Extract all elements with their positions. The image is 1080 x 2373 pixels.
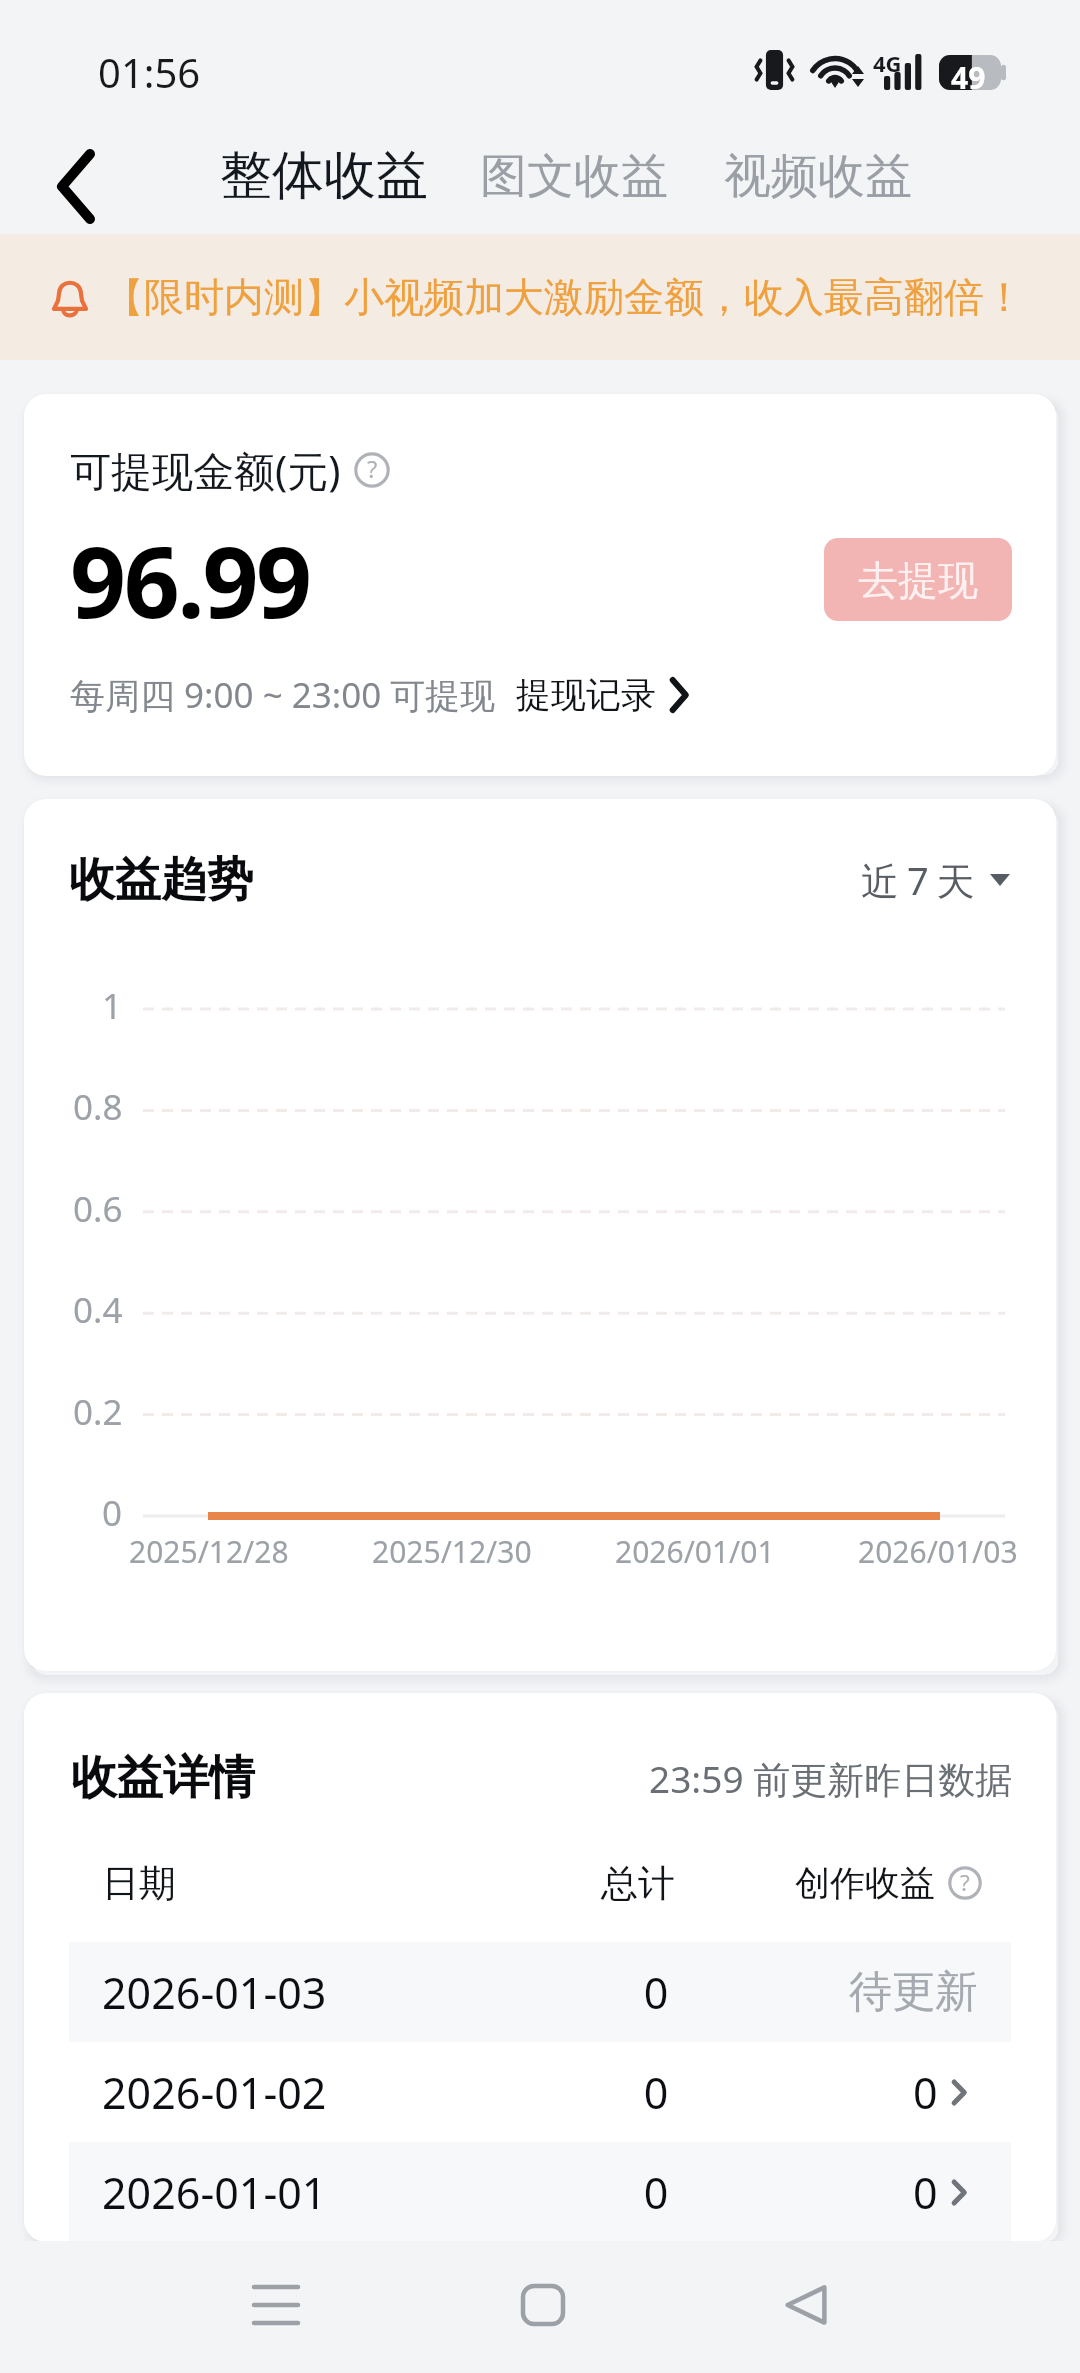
staticText: 01:56	[98, 45, 201, 99]
staticText: 2026-01-03	[102, 1963, 327, 2022]
staticText: 23:59 前更新昨日数据	[649, 1753, 1013, 1804]
button[interactable]: 视频收益	[724, 147, 912, 206]
staticText: 2026-01-01	[102, 2163, 327, 2222]
staticText: 4G	[873, 48, 902, 78]
staticText: 待更新	[849, 1965, 978, 2019]
staticText: 0	[913, 2163, 938, 2222]
button[interactable]: 【限时内测】小视频加大激励金额，收入最高翻倍！	[0, 234, 1080, 360]
staticText: 96.99	[70, 513, 310, 646]
button[interactable]: Help	[948, 1866, 982, 1900]
button[interactable]: 2026-01-01	[69, 2142, 1011, 2242]
staticText: 近 7 天	[861, 854, 974, 906]
staticText: 视频收益	[724, 147, 912, 206]
button[interactable]: 图文收益	[480, 147, 668, 206]
staticText: 每周四 9:00 ~ 23:00 可提现	[70, 671, 496, 719]
staticText: 收益趋势	[69, 851, 253, 909]
staticText: 总计	[538, 1860, 738, 1907]
button[interactable]: Back	[756, 2255, 856, 2355]
button[interactable]: 近 7 天	[861, 854, 1010, 906]
button[interactable]: 整体收益	[220, 143, 428, 209]
staticText: 2026-01-02	[102, 2063, 327, 2122]
staticText: 提现记录	[516, 673, 656, 717]
button[interactable]: 去提现	[824, 538, 1012, 621]
staticText: 图文收益	[480, 147, 668, 206]
staticText: 整体收益	[220, 143, 428, 209]
staticText: 0	[556, 1963, 756, 2022]
button[interactable]: Recent apps	[226, 2255, 326, 2355]
staticText: 收益详情	[71, 1749, 255, 1807]
staticText: 可提现金额(元)	[70, 442, 341, 498]
button[interactable]: 2026-01-03	[69, 1942, 1011, 2042]
staticText: 0	[913, 2063, 938, 2122]
button[interactable]: Back	[33, 143, 119, 229]
staticText: 49	[951, 57, 986, 98]
button[interactable]: Home	[493, 2255, 593, 2355]
button[interactable]: 2026-01-02	[69, 2042, 1011, 2142]
staticText: 0	[556, 2163, 756, 2222]
staticText: 去提现	[858, 555, 978, 605]
staticText: 日期	[102, 1860, 176, 1907]
staticText: 0	[556, 2063, 756, 2122]
staticText: ?	[960, 1867, 970, 1898]
button[interactable]: 提现记录	[516, 673, 688, 717]
staticText: 创作收益	[795, 1861, 935, 1905]
button[interactable]: Help	[354, 452, 390, 488]
staticText: ?	[367, 453, 378, 485]
staticText: 【限时内测】小视频加大激励金额，收入最高翻倍！	[104, 272, 1024, 322]
